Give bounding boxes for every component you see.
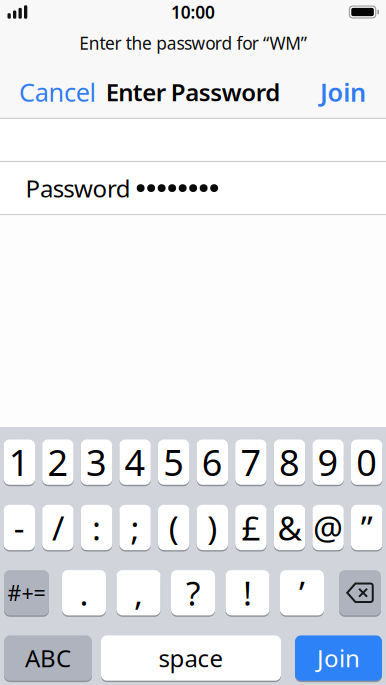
button[interactable]: ’ [280,570,324,615]
button[interactable]: 5 [158,439,189,485]
button[interactable]: Password [0,162,386,214]
staticText: Enter Password [106,76,280,108]
staticText: ( [169,505,179,550]
button[interactable]: #+= [4,570,49,615]
staticText: 5 [163,438,184,486]
staticText: Join [317,642,360,674]
staticText: 2 [47,438,68,486]
staticText: 0 [356,438,377,486]
button[interactable]: 4 [119,439,151,485]
staticText: 3 [86,438,107,486]
button[interactable]: - [4,505,35,550]
button[interactable]: £ [235,505,267,550]
button[interactable]: Join [295,635,382,681]
staticText: ! [243,571,252,615]
staticText: 10:00 [171,0,215,23]
button[interactable]: 9 [312,439,344,485]
staticText: Enter the password for “WM” [79,31,307,54]
button[interactable]: Delete [339,570,381,615]
staticText: Cancel [19,75,96,109]
button[interactable]: 2 [42,439,74,485]
button[interactable]: ” [351,505,382,550]
button[interactable]: 7 [235,439,267,485]
staticText: ) [207,505,217,550]
button[interactable]: 1 [4,439,35,485]
staticText: Join [320,75,366,109]
staticText: , [134,571,143,615]
button[interactable]: ) [197,505,228,550]
button[interactable]: / [42,505,74,550]
staticText: ABC [25,642,71,674]
staticText: £ [241,505,260,550]
staticText: 1 [9,438,30,486]
button[interactable]: @ [312,505,344,550]
staticText: ; [131,505,140,550]
staticText: 4 [125,438,146,486]
staticText: 6 [202,438,223,486]
staticText: 8 [279,438,300,486]
button[interactable]: 3 [81,439,112,485]
button[interactable]: Cancel [0,75,96,109]
staticText: & [277,505,301,550]
button[interactable]: ; [119,505,151,550]
button[interactable]: 0 [351,439,382,485]
staticText: 9 [318,438,339,486]
button[interactable]: ( [158,505,189,550]
staticText: ’ [299,571,305,615]
button[interactable]: ! [225,570,269,615]
staticText: 7 [240,438,261,486]
button[interactable]: , [116,570,160,615]
staticText: : [92,505,101,550]
button[interactable]: ? [171,570,215,615]
button[interactable]: Join [320,75,386,109]
staticText: Password [25,172,131,204]
button[interactable]: space [101,635,281,681]
staticText: space [158,642,223,674]
staticText: - [14,505,25,550]
staticText: ” [361,505,373,550]
button[interactable]: & [274,505,305,550]
staticText: #+= [7,579,45,607]
button[interactable]: . [62,570,106,615]
staticText: @ [313,505,343,550]
staticText: / [52,505,64,550]
staticText: . [79,571,88,615]
button[interactable]: 8 [274,439,305,485]
staticText: ? [186,571,200,615]
button[interactable]: : [81,505,112,550]
button[interactable]: 6 [197,439,228,485]
button[interactable]: ABC [4,635,92,681]
